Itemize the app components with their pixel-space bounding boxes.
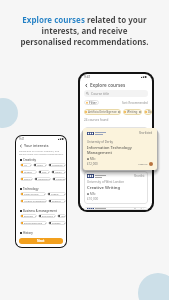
staticText: MSc: [90, 157, 96, 161]
staticText: Writing: [127, 110, 138, 114]
button[interactable]: Animation: [48, 163, 66, 167]
staticText: Technology: [23, 187, 39, 191]
staticText: Business & management: [23, 209, 57, 213]
button[interactable]: Robotics: [48, 199, 66, 203]
staticText: Graphic arts: [24, 171, 36, 174]
button[interactable]: Shortlist: [84, 171, 148, 204]
staticText: Entrepreneurship: [24, 222, 43, 225]
staticText: Business: [24, 215, 34, 218]
staticText: Art: [24, 164, 28, 167]
button[interactable]: Music: [33, 163, 47, 167]
staticText: Music: [37, 164, 43, 167]
button[interactable]: Shortlist: [84, 207, 148, 210]
button[interactable]: Entrepreneurship: [20, 221, 47, 225]
staticText: Media: [55, 171, 62, 174]
button[interactable]: Economics: [38, 214, 56, 218]
button[interactable]: Strategy: [48, 221, 66, 225]
button[interactable]: Graphic arts: [20, 170, 37, 174]
staticText: Explore courses related to your interest…: [20, 14, 149, 47]
button[interactable]: Artificial Intelligence: [84, 109, 121, 115]
staticText: History: [23, 231, 33, 235]
staticText: Next: [37, 239, 45, 243]
button[interactable]: Dance: [20, 177, 33, 181]
staticText: University of Derby: [87, 140, 113, 144]
button[interactable]: Art: [20, 163, 32, 167]
button[interactable]: Back: [19, 144, 23, 148]
button[interactable]: Marketing: [34, 177, 51, 181]
staticText: £10,000: [87, 197, 99, 201]
button[interactable]: Back: [84, 83, 89, 88]
button[interactable]: Coding: [47, 192, 66, 196]
staticText: Shortlist: [134, 174, 145, 178]
staticText: Creativity: [23, 158, 37, 162]
staticText: Marketing: [38, 178, 49, 181]
button[interactable]: Writing: [123, 109, 142, 115]
button[interactable]: Media: [51, 170, 66, 174]
button[interactable]: Next: [19, 238, 63, 244]
staticText: Robotics: [52, 200, 61, 203]
staticText: 24 courses found: [84, 118, 109, 122]
staticText: Dance: [24, 178, 31, 181]
button[interactable]: Business: [20, 214, 37, 218]
staticText: Cyber security: [24, 193, 39, 196]
staticText: Please pick all of your interests, and w…: [19, 149, 64, 155]
staticText: 9:41: [84, 75, 91, 79]
staticText: Shortlist: [134, 208, 145, 209]
button[interactable]: Filter: [84, 100, 99, 105]
button[interactable]: Film: [38, 170, 50, 174]
staticText: Design: [148, 110, 151, 114]
staticText: University of West London: [87, 180, 124, 184]
staticText: Filter: [89, 101, 97, 105]
staticText: Coding: [51, 193, 59, 196]
staticText: Artificial Intelligence: [88, 110, 117, 114]
button[interactable]: Shortlisted: [83, 128, 157, 170]
button[interactable]: Artificial intelligence: [20, 199, 47, 203]
staticText: Animation: [52, 164, 63, 167]
staticText: 9:41: [19, 137, 25, 141]
staticText: HR: [61, 215, 64, 218]
staticText: Sort: Recommended: [122, 101, 148, 105]
staticText: MSc: [90, 192, 96, 196]
staticText: Creative Writing: [87, 185, 121, 191]
staticText: Theatre: [56, 178, 64, 181]
staticText: Your interests: [24, 143, 49, 148]
staticText: Information Technology Management: [87, 145, 132, 155]
button[interactable]: Design: [144, 109, 152, 115]
staticText: Artificial intelligence: [24, 200, 45, 203]
button[interactable]: Theatre: [52, 177, 66, 181]
staticText: Economics: [42, 215, 53, 218]
staticText: Strategy: [52, 222, 61, 225]
staticText: Added by: [138, 163, 148, 166]
staticText: Film: [42, 171, 47, 174]
staticText: Explore courses: [90, 82, 126, 88]
button[interactable]: Course title: [84, 90, 148, 97]
staticText: Course title: [91, 91, 110, 96]
staticText: £12,000: [87, 162, 98, 166]
staticText: Shortlisted: [139, 131, 153, 135]
button[interactable]: HR: [57, 214, 66, 218]
button[interactable]: Cyber security: [20, 192, 46, 196]
